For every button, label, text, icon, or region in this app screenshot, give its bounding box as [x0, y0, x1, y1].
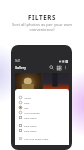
button[interactable]: Date taken — [15, 115, 69, 120]
button[interactable]: Photo — [15, 73, 41, 95]
staticText: 9:41 — [15, 59, 21, 63]
button[interactable]: Use Ascii folder order — [15, 136, 69, 141]
staticText: Date — [24, 101, 30, 104]
staticText: Last modified — [24, 111, 40, 114]
staticText: Size — [24, 106, 29, 109]
button[interactable]: Grid view — [56, 65, 61, 70]
staticText: Gallery — [15, 66, 26, 70]
staticText: Name — [24, 96, 31, 99]
staticText: FILTERS — [0, 13, 84, 21]
button[interactable]: Date — [15, 100, 69, 105]
button[interactable]: Name — [15, 95, 69, 100]
staticText: Use Ascii folder order — [24, 137, 49, 140]
button[interactable]: Date taken — [15, 123, 69, 128]
button[interactable]: Photo — [43, 73, 69, 95]
staticText: Sort all photos as per your own convenie… — [0, 22, 84, 32]
staticText: Date taken — [24, 129, 37, 132]
staticText: Date taken — [24, 124, 37, 127]
button[interactable]: More options — [63, 65, 68, 70]
button[interactable]: Last modified — [15, 110, 69, 115]
button[interactable]: Size — [15, 105, 69, 110]
button[interactable]: Search — [49, 65, 54, 70]
button[interactable]: Date taken — [15, 128, 69, 133]
staticText: Date taken — [24, 116, 37, 119]
